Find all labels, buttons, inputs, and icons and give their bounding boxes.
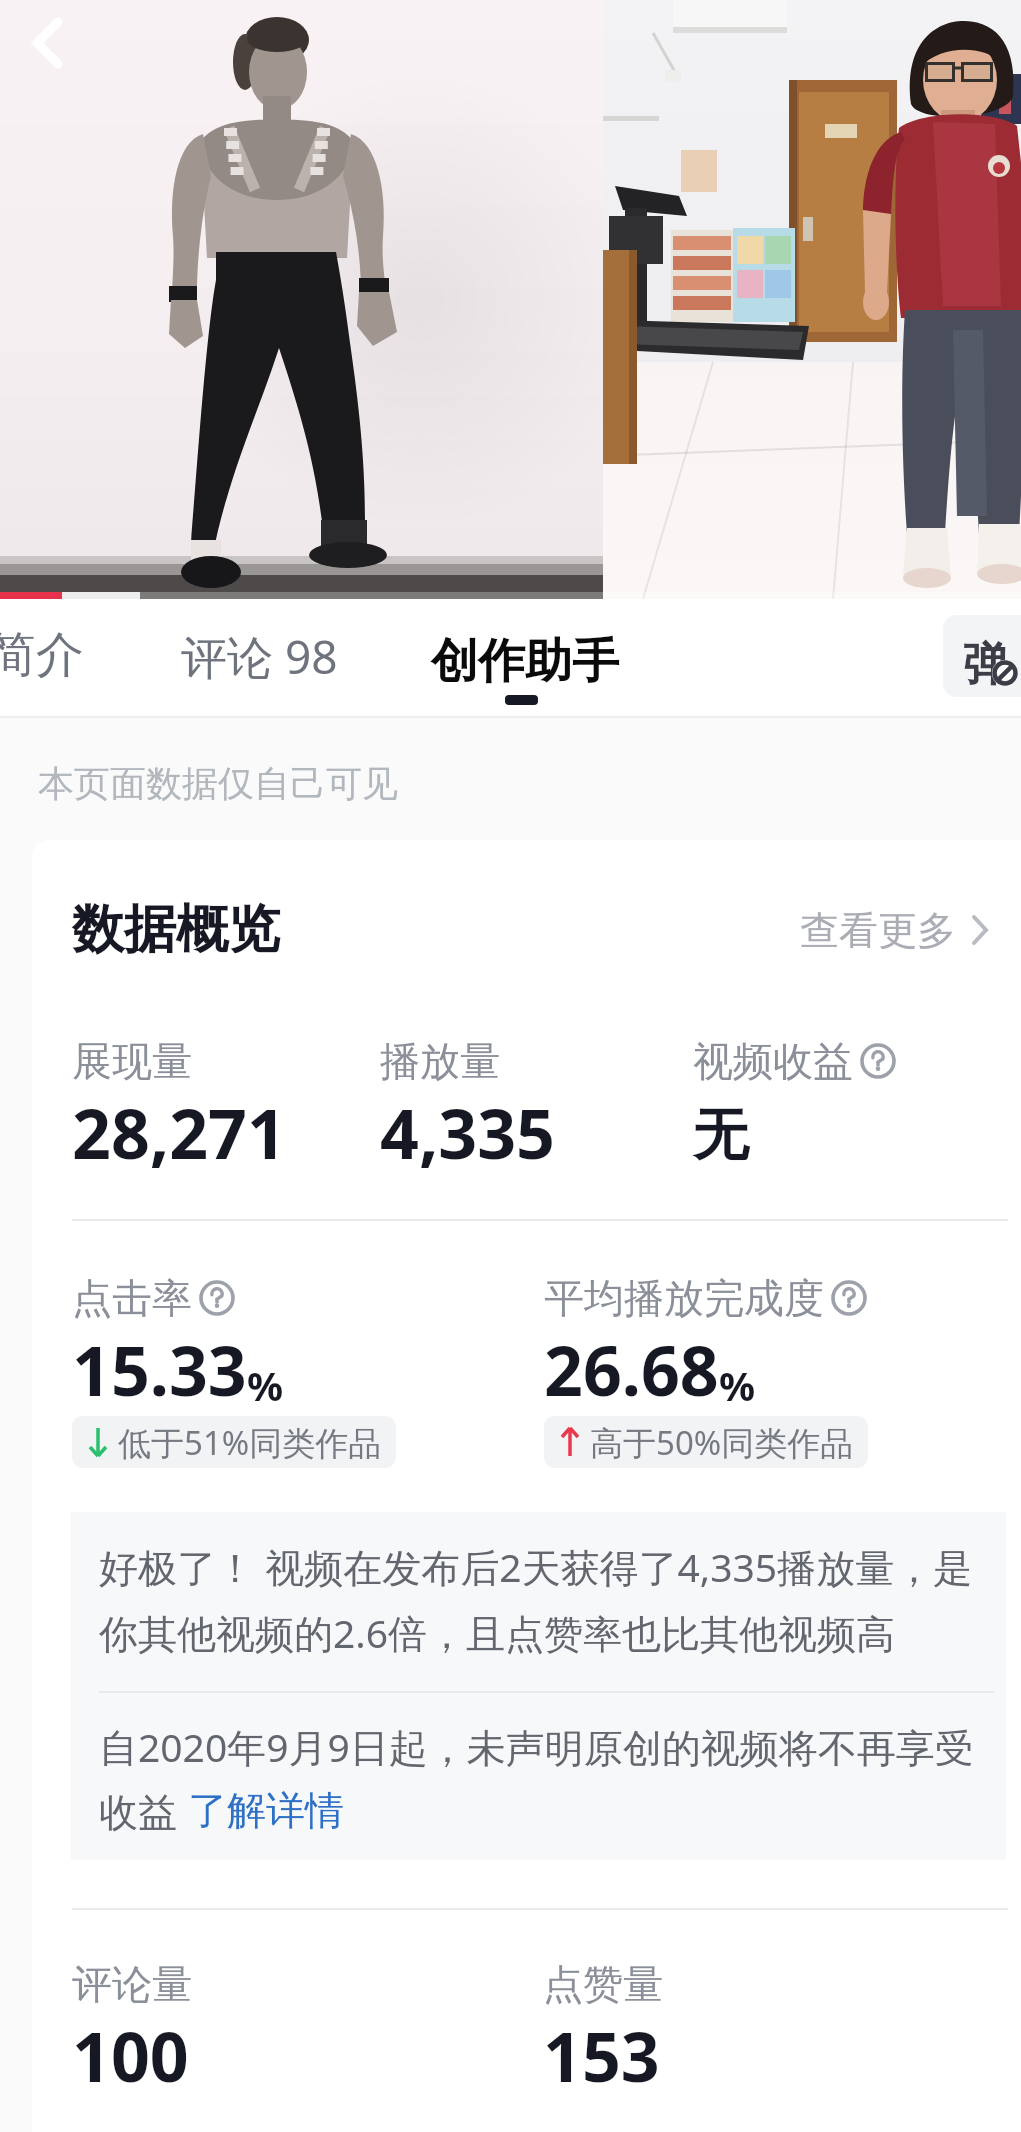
staticText: 26.68 bbox=[544, 1323, 719, 1416]
button[interactable]: 创作助手 bbox=[430, 607, 625, 712]
button[interactable]: 弹幕开关 bbox=[943, 615, 1021, 697]
staticText: 15.33 bbox=[72, 1323, 247, 1416]
staticText: 无 bbox=[693, 1100, 749, 1171]
staticText: 了解详情 bbox=[188, 1786, 344, 1835]
staticText: 153 bbox=[543, 2009, 660, 2102]
staticText: 创作助手 bbox=[431, 632, 619, 691]
staticText: 数据概览 bbox=[72, 897, 280, 963]
staticText: 高于50%同类作品 bbox=[590, 1420, 854, 1465]
button[interactable]: 返回 bbox=[12, 8, 82, 78]
staticText: 展现量 bbox=[72, 1036, 192, 1086]
staticText: 弹 bbox=[963, 636, 1009, 694]
staticText: 视频收益 bbox=[693, 1036, 853, 1086]
button[interactable]: 评论 98 bbox=[181, 619, 346, 693]
staticText: 收益 bbox=[99, 1784, 188, 1837]
staticText: % bbox=[719, 1358, 756, 1412]
button[interactable]: 了解详情 bbox=[188, 1786, 344, 1835]
staticText: 100 bbox=[72, 2009, 189, 2102]
staticText: % bbox=[247, 1358, 284, 1412]
staticText: 28,271 bbox=[72, 1086, 286, 1179]
staticText: 简介 bbox=[0, 625, 84, 685]
staticText: 平均播放完成度 bbox=[544, 1273, 824, 1323]
staticText: 低于51%同类作品 bbox=[118, 1420, 382, 1465]
staticText: 点赞量 bbox=[543, 1959, 663, 2009]
button[interactable]: 简介 bbox=[0, 618, 93, 692]
staticText: 本页面数据仅自己可见 bbox=[38, 761, 398, 806]
staticText: 4,335 bbox=[380, 1086, 555, 1179]
staticText: 查看更多 bbox=[800, 906, 956, 955]
staticText: 评论量 bbox=[72, 1959, 192, 2009]
staticText: 自2020年9月9日起，未声明原创的视频将不再享受 bbox=[99, 1720, 974, 1773]
staticText: 播放量 bbox=[380, 1036, 500, 1086]
button[interactable]: 数据概览 bbox=[32, 897, 1021, 963]
staticText: 评论 98 bbox=[181, 625, 338, 688]
staticText: 好极了！ 视频在发布后2天获得了4,335播放量，是你其他视频的2.6倍，且点赞… bbox=[99, 1540, 986, 1660]
staticText: 点击率 bbox=[72, 1273, 192, 1323]
